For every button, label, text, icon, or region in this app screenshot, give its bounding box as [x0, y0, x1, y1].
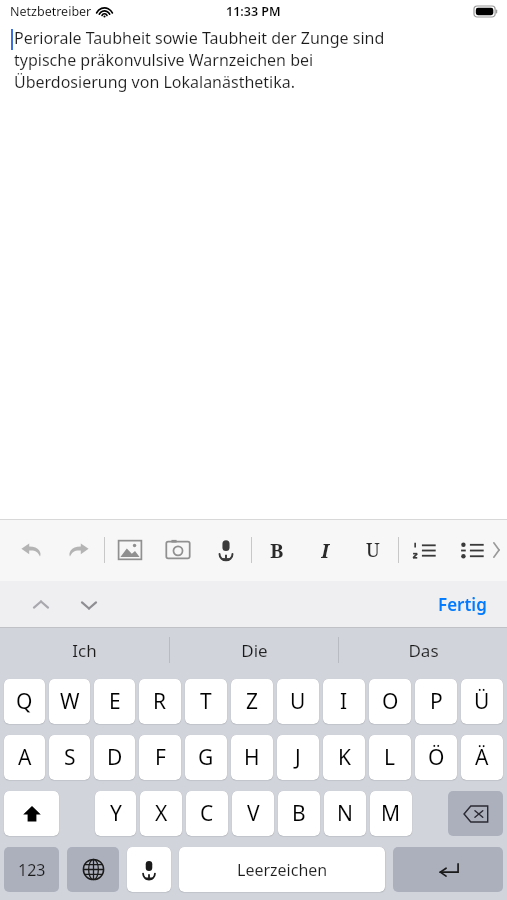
button[interactable]: U — [360, 537, 386, 563]
staticText: U — [290, 687, 306, 716]
button[interactable]: T — [185, 679, 227, 724]
staticText: Die — [241, 639, 268, 662]
staticText: Ich — [72, 639, 97, 662]
staticText: K — [338, 743, 351, 772]
button[interactable]: W — [49, 679, 90, 724]
button[interactable]: L — [369, 735, 411, 780]
button[interactable]: Dictation — [127, 847, 171, 892]
staticText: W — [60, 687, 80, 716]
button[interactable]: B — [264, 537, 290, 563]
staticText: Ü — [474, 687, 490, 716]
staticText: U — [366, 537, 380, 563]
button[interactable]: Change keyboard language — [67, 847, 119, 892]
button[interactable]: Q — [4, 679, 45, 724]
button[interactable]: Previous field — [24, 588, 58, 622]
button[interactable]: K — [323, 735, 365, 780]
button[interactable]: Bulleted list — [459, 537, 485, 563]
staticText: F — [155, 743, 166, 772]
button[interactable]: Redo — [64, 535, 94, 565]
button[interactable]: Periorale Taubheit sowie Taubheit der Zu… — [0, 22, 507, 519]
button[interactable]: Y — [95, 791, 136, 836]
staticText: Das — [408, 639, 439, 662]
staticText: S — [64, 743, 76, 772]
button[interactable]: E — [94, 679, 135, 724]
button[interactable]: D — [94, 735, 135, 780]
staticText: L — [384, 743, 396, 772]
button[interactable]: Leerzeichen — [179, 847, 385, 892]
staticText: Q — [16, 687, 33, 716]
button[interactable]: P — [415, 679, 457, 724]
button[interactable]: Next field — [72, 588, 106, 622]
button[interactable]: Ä — [461, 735, 503, 780]
button[interactable]: I — [323, 679, 365, 724]
button[interactable]: X — [140, 791, 182, 836]
button[interactable]: Camera — [163, 535, 193, 565]
staticText: G — [198, 743, 214, 772]
staticText: V — [247, 799, 260, 828]
staticText: Netzbetreiber — [10, 3, 92, 20]
button[interactable]: Dictate — [211, 535, 241, 565]
staticText: I — [340, 687, 348, 716]
staticText: B — [292, 799, 306, 828]
staticText: Ä — [475, 743, 489, 772]
button[interactable]: N — [324, 791, 366, 836]
button[interactable]: Das — [339, 628, 507, 672]
staticText: 123 — [18, 859, 46, 881]
button[interactable]: A — [4, 735, 45, 780]
button[interactable]: O — [369, 679, 411, 724]
staticText: E — [109, 687, 121, 716]
staticText: typische präkonvulsive Warnzeichen bei — [14, 49, 314, 71]
button[interactable]: Undo — [16, 535, 46, 565]
staticText: Fertig — [438, 593, 487, 616]
staticText: P — [430, 687, 443, 716]
staticText: C — [200, 799, 214, 828]
button[interactable]: U — [277, 679, 319, 724]
staticText: J — [295, 743, 301, 772]
staticText: Periorale Taubheit sowie Taubheit der Zu… — [14, 27, 385, 49]
staticText: Ö — [428, 743, 445, 772]
staticText: X — [155, 799, 168, 828]
button[interactable]: Backspace — [448, 791, 503, 836]
staticText: M — [381, 799, 401, 828]
button[interactable]: Ö — [415, 735, 457, 780]
button[interactable]: I — [312, 537, 338, 563]
button[interactable]: F — [139, 735, 181, 780]
button[interactable]: Fertig — [432, 587, 493, 622]
button[interactable]: B — [278, 791, 320, 836]
button[interactable]: Insert image — [115, 535, 145, 565]
button[interactable]: R — [139, 679, 181, 724]
staticText: B — [270, 537, 284, 563]
button[interactable]: M — [370, 791, 412, 836]
button[interactable]: S — [49, 735, 90, 780]
staticText: Z — [246, 687, 259, 716]
button[interactable]: More options — [485, 535, 507, 565]
staticText: N — [337, 799, 353, 828]
staticText: A — [18, 743, 32, 772]
button[interactable]: J — [277, 735, 319, 780]
button[interactable]: G — [185, 735, 227, 780]
button[interactable]: Ü — [461, 679, 503, 724]
button[interactable]: Numbered list — [411, 537, 437, 563]
staticText: 11:33 PM — [226, 3, 281, 20]
button[interactable]: Z — [231, 679, 273, 724]
staticText: Überdosierung von Lokalanästhetika. — [14, 71, 296, 93]
staticText: I — [321, 537, 330, 563]
staticText: D — [107, 743, 123, 772]
staticText: R — [153, 687, 167, 716]
staticText: Y — [110, 799, 122, 828]
button[interactable]: C — [186, 791, 228, 836]
staticText: O — [382, 687, 399, 716]
button[interactable]: Ich — [0, 628, 169, 672]
staticText: Leerzeichen — [237, 859, 328, 881]
staticText: H — [244, 743, 260, 772]
button[interactable]: 123 — [4, 847, 59, 892]
button[interactable]: H — [231, 735, 273, 780]
button[interactable]: Shift — [4, 791, 59, 836]
button[interactable]: Die — [170, 628, 338, 672]
button[interactable]: Return — [393, 847, 503, 892]
staticText: T — [200, 687, 212, 716]
button[interactable]: V — [232, 791, 274, 836]
